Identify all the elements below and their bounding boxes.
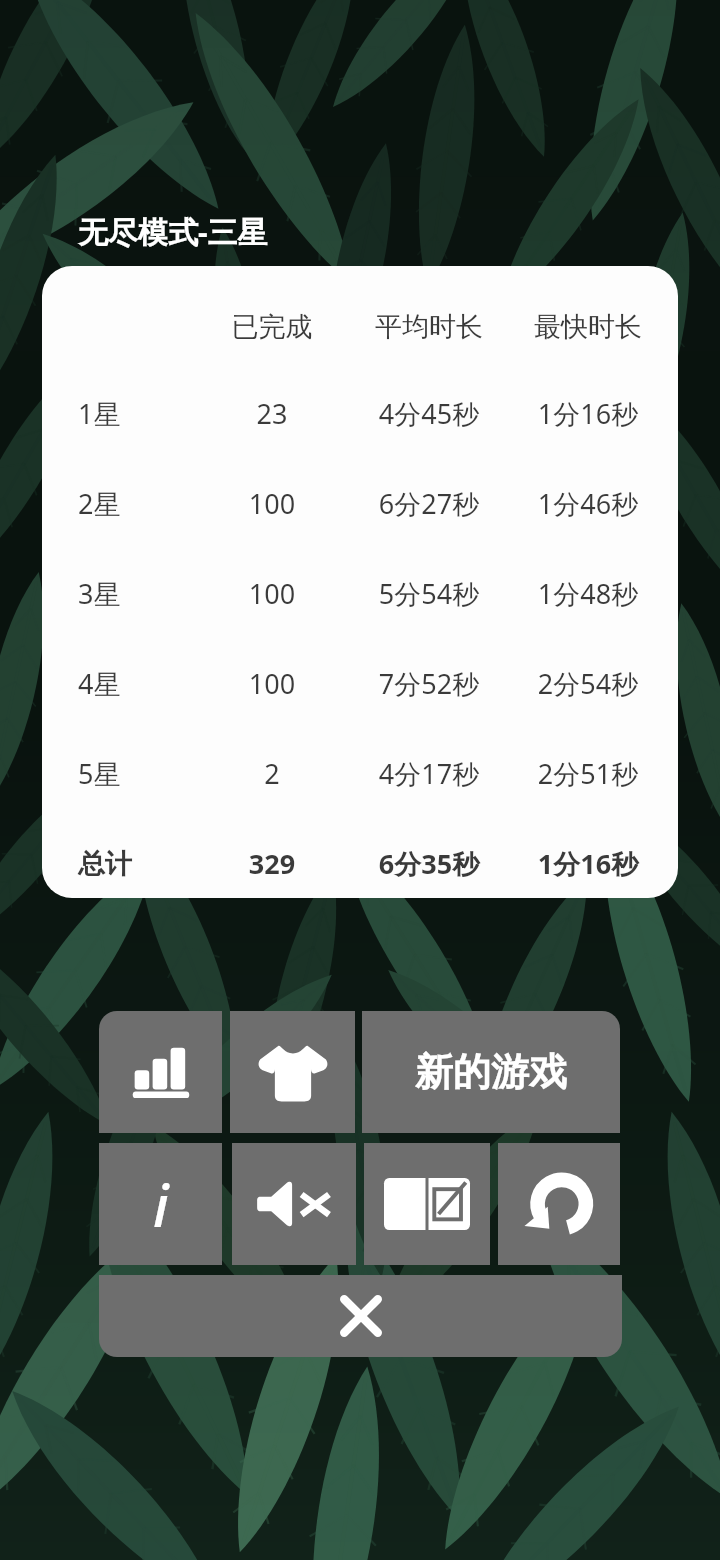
staticText: 无尽模式-三星 [78, 211, 268, 252]
staticText: 最快时长 [512, 310, 664, 344]
staticText: 100 [198, 665, 346, 702]
staticText: 4分17秒 [346, 755, 512, 792]
button[interactable]: Themes [230, 1011, 355, 1133]
staticText: 1分46秒 [512, 485, 664, 522]
staticText: 6分27秒 [346, 485, 512, 522]
staticText: 4分45秒 [346, 395, 512, 432]
staticText: 2 [198, 755, 346, 792]
staticText: 5分54秒 [346, 575, 512, 612]
staticText: i [153, 1165, 169, 1244]
button[interactable]: Statistics [99, 1011, 222, 1133]
staticText: 7分52秒 [346, 665, 512, 702]
button[interactable]: Info [99, 1143, 222, 1265]
button[interactable]: Restart [498, 1143, 620, 1265]
button[interactable]: Mute [232, 1143, 356, 1265]
staticText: 3星 [78, 575, 198, 612]
staticText: 4星 [78, 665, 198, 702]
staticText: 1分48秒 [512, 575, 664, 612]
staticText: 100 [198, 575, 346, 612]
staticText: 23 [198, 395, 346, 432]
staticText: 1分16秒 [512, 845, 664, 882]
staticText: 1分16秒 [512, 395, 664, 432]
staticText: 总计 [78, 847, 198, 881]
staticText: 5星 [78, 755, 198, 792]
staticText: 329 [198, 845, 346, 882]
staticText: 2星 [78, 485, 198, 522]
staticText: 2分51秒 [512, 755, 664, 792]
staticText: 2分54秒 [512, 665, 664, 702]
staticText: 100 [198, 485, 346, 522]
staticText: 新的游戏 [415, 1048, 567, 1096]
button[interactable]: Notes [364, 1143, 490, 1265]
staticText: 6分35秒 [346, 845, 512, 882]
staticText: 平均时长 [346, 310, 512, 344]
button[interactable]: Close [99, 1275, 622, 1357]
staticText: 已完成 [198, 310, 346, 344]
button[interactable]: 新的游戏 [362, 1011, 620, 1133]
staticText: 1星 [78, 395, 198, 432]
